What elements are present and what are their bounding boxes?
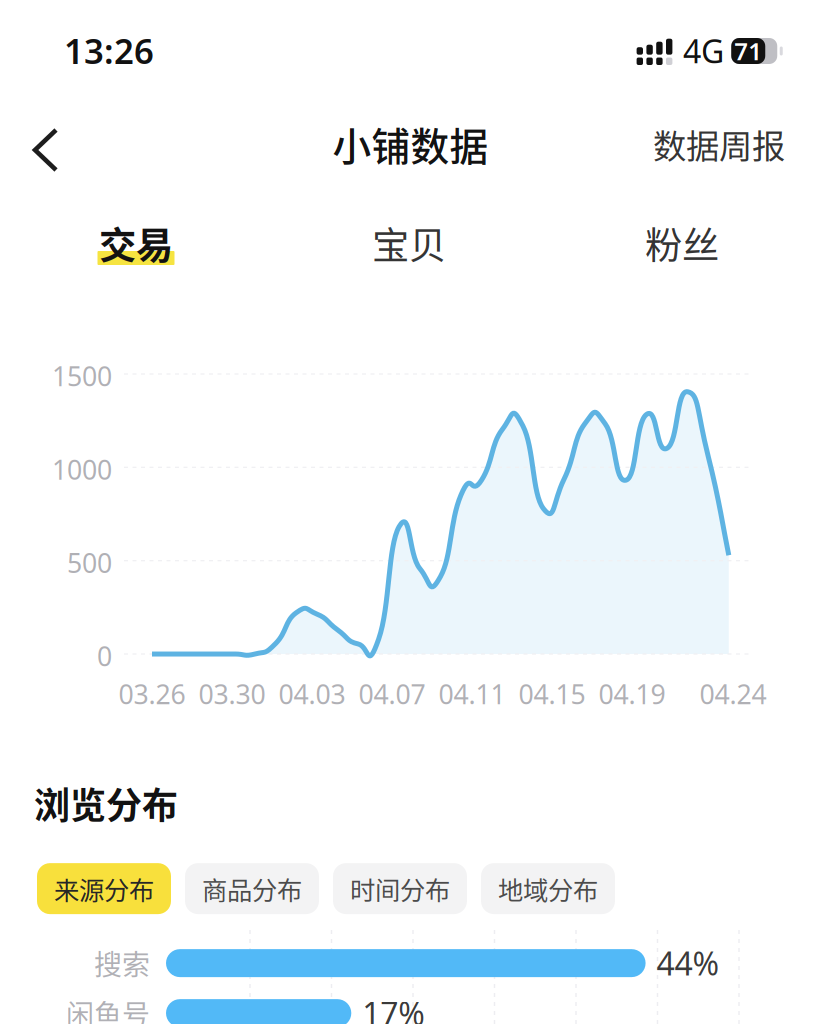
- staticText: 04.07: [358, 676, 425, 712]
- staticText: 03.26: [118, 676, 185, 712]
- staticText: 来源分布: [54, 870, 154, 907]
- staticText: 04.19: [598, 676, 665, 712]
- staticText: 时间分布: [350, 870, 450, 907]
- staticText: 宝贝: [372, 216, 446, 270]
- staticText: 03.30: [198, 676, 265, 712]
- button[interactable]: 宝贝: [0, 0, 273, 86]
- staticText: 数据周报: [653, 120, 785, 168]
- staticText: 0: [97, 638, 112, 674]
- staticText: 4G: [683, 29, 724, 73]
- staticText: 浏览分布: [34, 777, 178, 829]
- staticText: 闲鱼号: [66, 993, 150, 1024]
- staticText: 1500: [52, 358, 112, 394]
- button[interactable]: 数据周报: [635, 111, 803, 177]
- staticText: 17%: [362, 991, 425, 1024]
- staticText: 04.03: [278, 676, 345, 712]
- button[interactable]: Back: [15, 109, 77, 179]
- staticText: 地域分布: [498, 870, 598, 907]
- staticText: 13:26: [64, 27, 154, 74]
- staticText: 04.15: [518, 676, 585, 712]
- staticText: 500: [67, 544, 112, 581]
- staticText: 交易: [99, 216, 173, 270]
- button[interactable]: 交易: [0, 0, 273, 86]
- button[interactable]: 地域分布: [481, 863, 615, 914]
- staticText: 小铺数据: [332, 116, 488, 172]
- staticText: 04.11: [438, 676, 505, 712]
- staticText: 商品分布: [202, 870, 302, 907]
- button[interactable]: 商品分布: [185, 863, 319, 914]
- staticText: 71: [734, 35, 762, 67]
- button[interactable]: 时间分布: [333, 863, 467, 914]
- staticText: 44%: [657, 941, 720, 985]
- staticText: 粉丝: [645, 216, 719, 270]
- button[interactable]: 来源分布: [37, 863, 171, 914]
- staticText: 04.24: [699, 676, 766, 712]
- staticText: 1000: [52, 451, 112, 487]
- staticText: 搜索: [94, 943, 150, 983]
- button[interactable]: 粉丝: [0, 0, 273, 86]
